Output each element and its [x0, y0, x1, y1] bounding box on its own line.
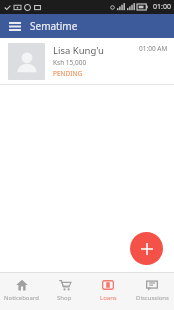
- button[interactable]: Add: [130, 232, 163, 265]
- button[interactable]: Shop: [43, 273, 86, 310]
- button[interactable]: Loans: [86, 273, 130, 310]
- button[interactable]: Noticeboard: [0, 273, 43, 310]
- staticText: 01:00 AM: [139, 44, 168, 53]
- staticText: PENDING: [53, 69, 83, 78]
- staticText: Noticeboard: [4, 294, 39, 302]
- staticText: Shop: [57, 294, 72, 302]
- button[interactable]: Lisa Kung'u: [0, 38, 174, 85]
- staticText: Loans: [100, 294, 117, 302]
- staticText: Discussions: [136, 294, 169, 302]
- staticText: Sematime: [30, 19, 78, 33]
- button[interactable]: Open navigation drawer: [6, 17, 24, 35]
- button[interactable]: Discussions: [130, 273, 174, 310]
- staticText: Lisa Kung'u: [53, 44, 104, 57]
- staticText: Ksh 15,000: [53, 58, 87, 67]
- staticText: 01:00: [153, 2, 171, 12]
